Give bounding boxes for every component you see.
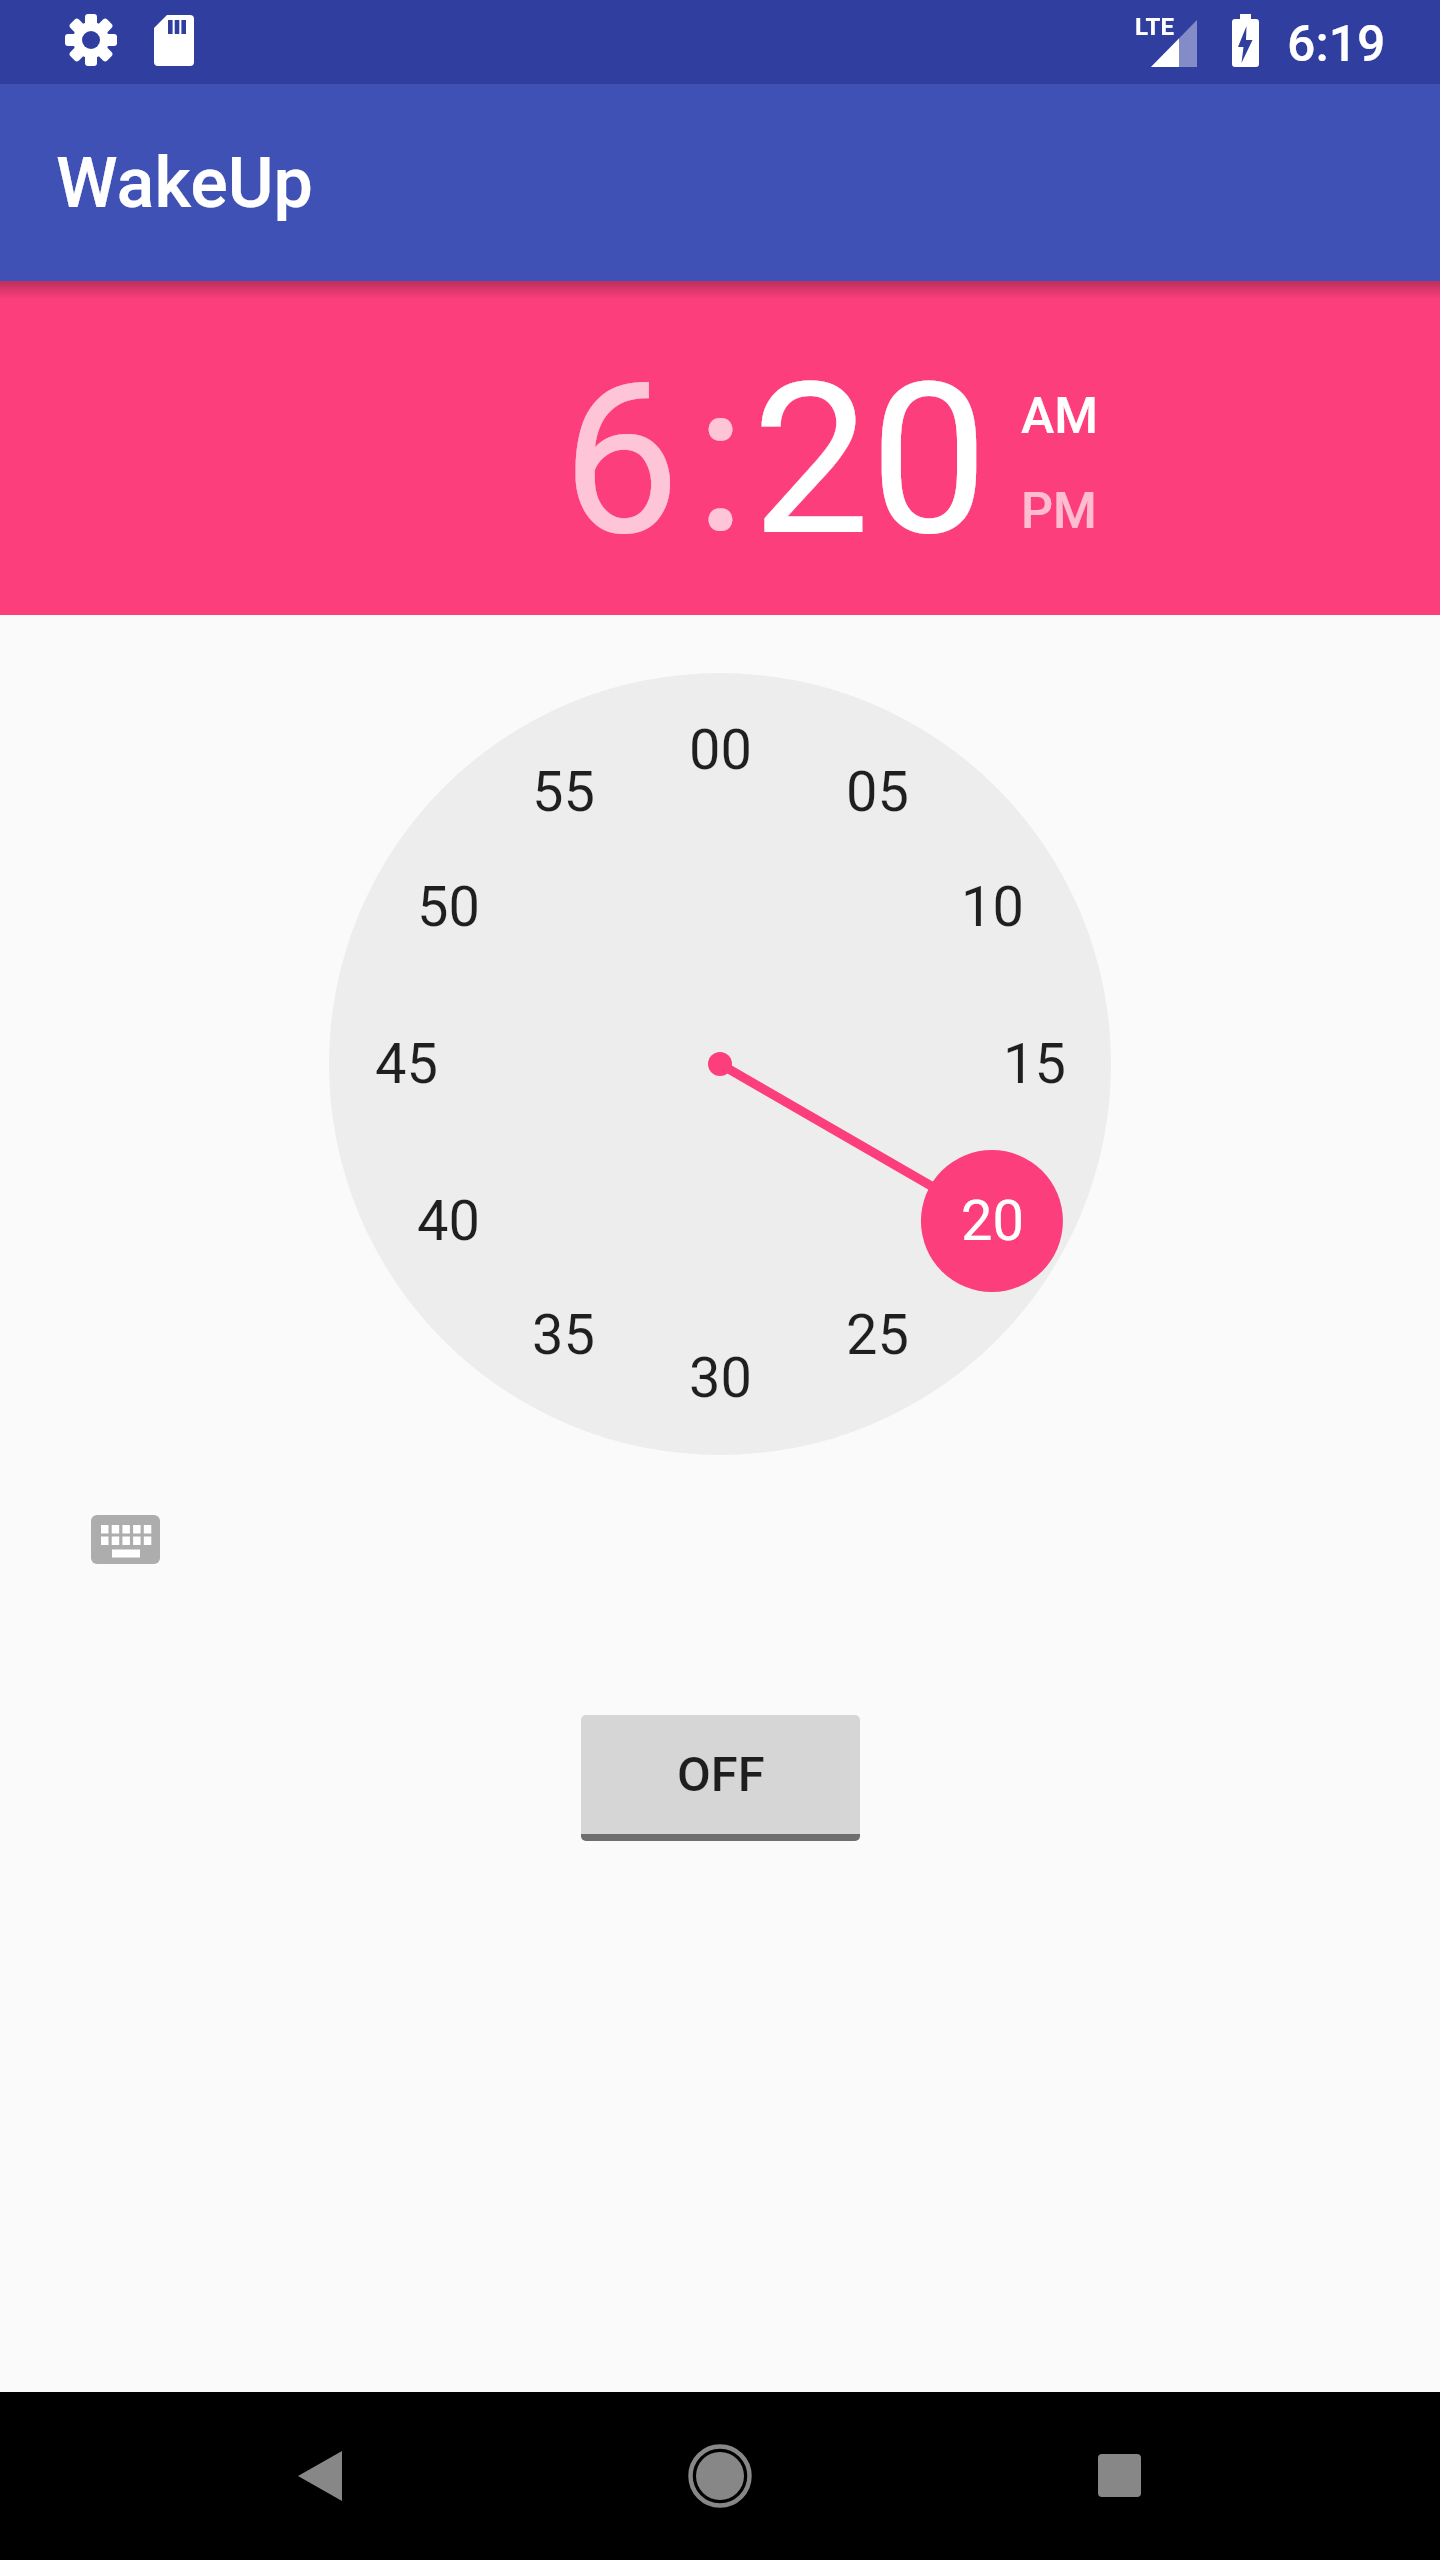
button[interactable]: 6 <box>491 310 751 610</box>
button[interactable] <box>236 2392 404 2560</box>
staticText: 6 <box>562 337 681 583</box>
button[interactable] <box>329 673 1111 1455</box>
staticText: 05 <box>846 759 909 825</box>
staticText: 10 <box>961 874 1024 940</box>
staticText: 00 <box>689 717 752 783</box>
staticText: 35 <box>532 1302 595 1368</box>
button[interactable] <box>636 2392 804 2560</box>
staticText: 45 <box>375 1031 438 1097</box>
staticText: 30 <box>689 1345 752 1411</box>
button[interactable] <box>1036 2392 1204 2560</box>
staticText: LTE <box>1135 13 1174 41</box>
staticText: 15 <box>1003 1031 1066 1097</box>
staticText: 50 <box>417 874 480 940</box>
staticText: 20 <box>961 1188 1024 1254</box>
staticText: 40 <box>417 1188 480 1254</box>
button[interactable]: AM <box>990 381 1130 451</box>
staticText: : <box>695 335 746 581</box>
staticText: 55 <box>532 759 595 825</box>
staticText: PM <box>1021 482 1097 541</box>
button[interactable]: OFF <box>581 1715 860 1841</box>
button[interactable]: PM <box>989 476 1129 546</box>
staticText: 20 <box>752 337 989 583</box>
staticText: OFF <box>677 1746 765 1803</box>
staticText: WakeUp <box>56 142 313 224</box>
staticText: AM <box>1021 387 1099 446</box>
button[interactable] <box>91 1515 160 1564</box>
button[interactable]: 20 <box>720 310 1020 610</box>
staticText: 6:19 <box>1287 15 1386 74</box>
staticText: 25 <box>846 1302 909 1368</box>
